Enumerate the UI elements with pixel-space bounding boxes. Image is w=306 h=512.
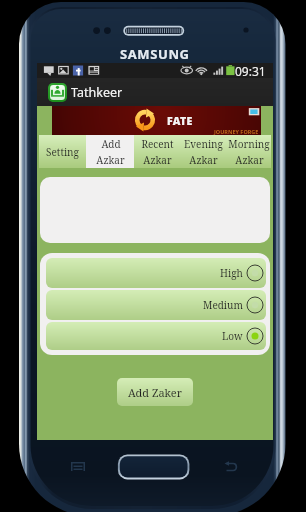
staticText: Recent (141, 137, 174, 151)
button[interactable]: Morning (227, 135, 271, 168)
staticText: Morning (228, 137, 270, 151)
button[interactable]: Add Zaker (117, 378, 193, 406)
staticText: JOURNEY FORGE (214, 128, 259, 135)
staticText: Add Zaker (128, 385, 182, 400)
button[interactable]: FATE (52, 106, 261, 135)
staticText: 09:31 (235, 63, 266, 78)
button[interactable]: Recent (134, 135, 180, 168)
staticText: Add (101, 137, 121, 151)
staticText: Low (222, 329, 243, 343)
button[interactable]: Low (46, 322, 266, 350)
button[interactable] (40, 177, 270, 243)
staticText: Azkar (235, 153, 264, 167)
staticText: FATE (167, 114, 193, 128)
button[interactable]: Medium (46, 290, 266, 320)
button[interactable]: High (46, 258, 266, 288)
staticText: Medium (203, 298, 243, 312)
staticText: Setting (46, 145, 79, 159)
button[interactable]: Add (86, 135, 134, 168)
staticText: Azkar (96, 153, 125, 167)
staticText: Tathkeer (71, 84, 123, 101)
button[interactable]: Menu (64, 453, 92, 481)
staticText: Azkar (189, 153, 218, 167)
button[interactable]: Evening (180, 135, 227, 168)
staticText: Azkar (143, 153, 172, 167)
staticText: SAMSUNG (120, 45, 190, 60)
staticText: Evening (184, 137, 223, 151)
staticText: High (220, 266, 243, 280)
button[interactable]: Back (217, 453, 245, 481)
button[interactable]: Setting (39, 135, 86, 168)
